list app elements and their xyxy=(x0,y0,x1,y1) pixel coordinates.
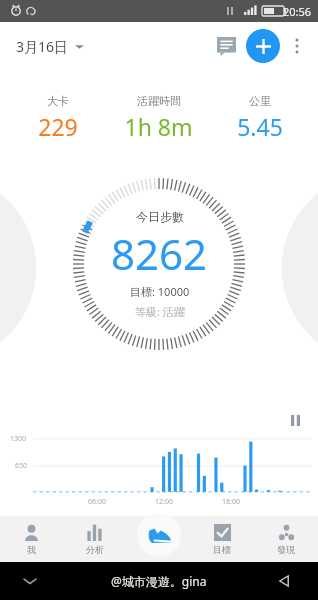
staticText: 12:00 xyxy=(155,497,173,507)
staticText: 今日步數 xyxy=(136,209,184,224)
button[interactable]: 分析 xyxy=(63,516,126,562)
button[interactable]: 公里 xyxy=(209,92,310,144)
button[interactable]: Messages xyxy=(208,28,244,64)
staticText: 229 xyxy=(38,111,78,142)
button[interactable]: Add xyxy=(246,29,280,63)
staticText: 發現 xyxy=(277,544,295,555)
button[interactable]: 發現 xyxy=(254,516,318,562)
staticText: 等級: 活躍 xyxy=(135,304,185,319)
staticText: 3月16日 xyxy=(16,37,69,56)
staticText: 分析 xyxy=(86,544,104,555)
button[interactable]: Start activity xyxy=(137,513,181,557)
staticText: 目標 xyxy=(213,544,231,555)
button[interactable]: Pause xyxy=(284,409,306,431)
staticText: 20:56 xyxy=(283,4,312,19)
button[interactable]: 大卡 xyxy=(8,92,108,144)
staticText: @城市漫遊。gina xyxy=(111,573,207,589)
button[interactable]: Collapse xyxy=(18,569,42,593)
staticText: 大卡 xyxy=(47,94,69,108)
button[interactable]: 目標 xyxy=(190,516,254,562)
staticText: 公里 xyxy=(249,94,271,108)
button[interactable]: More options xyxy=(280,29,314,63)
button[interactable]: 3月16日 xyxy=(12,33,88,60)
button[interactable]: Back xyxy=(272,569,296,593)
staticText: 我 xyxy=(27,544,36,555)
staticText: 1h 8m xyxy=(124,111,193,142)
staticText: 活躍時間 xyxy=(137,94,181,108)
button[interactable]: 活躍時間 xyxy=(108,92,209,144)
staticText: 18:00 xyxy=(222,497,240,507)
staticText: 8262 xyxy=(111,225,208,282)
staticText: 目標: 10000 xyxy=(130,284,190,299)
button[interactable]: 我 xyxy=(0,516,63,562)
staticText: 06:00 xyxy=(88,497,106,507)
staticText: 5.45 xyxy=(237,111,283,142)
staticText: 1300 xyxy=(10,434,27,444)
staticText: 650 xyxy=(15,461,28,471)
